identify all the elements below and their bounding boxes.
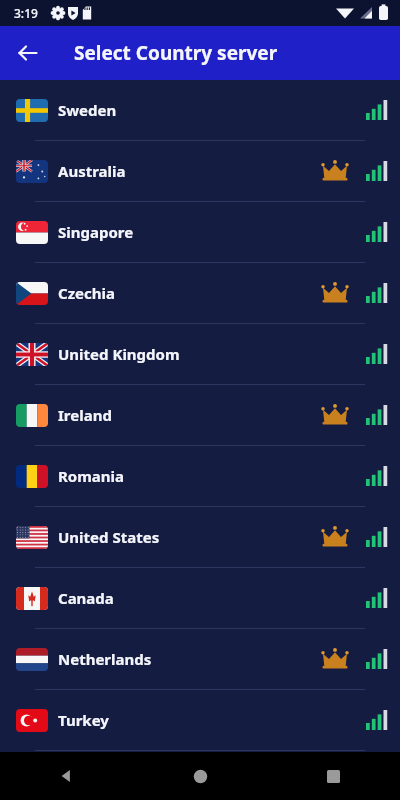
button[interactable]: Czechia	[0, 263, 400, 324]
button[interactable]: Back	[8, 33, 48, 73]
button[interactable]: Back	[0, 752, 134, 800]
staticText: Australia	[58, 161, 126, 181]
button[interactable]: Sweden	[0, 80, 400, 141]
staticText: Sweden	[58, 100, 117, 120]
button[interactable]: Canada	[0, 568, 400, 629]
button[interactable]: Australia	[0, 141, 400, 202]
button[interactable]: United Kingdom	[0, 324, 400, 385]
staticText: Romania	[58, 466, 125, 486]
button[interactable]: Turkey	[0, 690, 400, 751]
button[interactable]: Netherlands	[0, 629, 400, 690]
button[interactable]: Home	[134, 752, 267, 800]
staticText: Singapore	[58, 222, 134, 242]
staticText: Select Country server	[74, 40, 278, 66]
button[interactable]: Singapore	[0, 202, 400, 263]
staticText: Turkey	[58, 710, 109, 730]
staticText: 3:19	[14, 5, 38, 21]
staticText: Czechia	[58, 283, 115, 303]
staticText: United States	[58, 527, 160, 547]
button[interactable]: United States	[0, 507, 400, 568]
button[interactable]: Romania	[0, 446, 400, 507]
staticText: Canada	[58, 588, 114, 608]
staticText: Netherlands	[58, 649, 152, 669]
staticText: United Kingdom	[58, 344, 180, 364]
staticText: Ireland	[58, 405, 112, 425]
button[interactable]: Recent apps	[267, 752, 400, 800]
button[interactable]: Ireland	[0, 385, 400, 446]
